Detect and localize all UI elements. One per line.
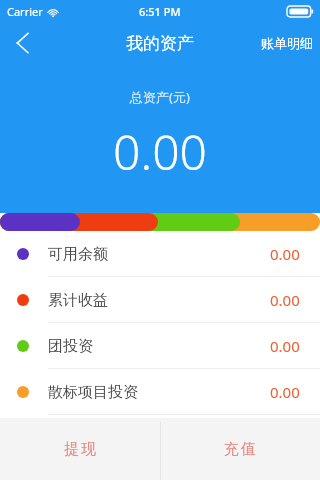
- staticText: 0.00: [270, 382, 300, 402]
- staticText: 0.00: [113, 119, 207, 184]
- button[interactable]: 累计收益: [0, 277, 320, 323]
- staticText: 累计收益: [48, 291, 108, 310]
- button[interactable]: Back: [0, 22, 44, 64]
- staticText: 充值: [223, 440, 257, 459]
- staticText: 散标项目投资: [48, 383, 138, 402]
- staticText: 6:51 PM: [139, 4, 181, 19]
- staticText: 账单明细: [261, 35, 313, 51]
- staticText: 总资产(元): [130, 88, 190, 106]
- staticText: Carrier: [7, 4, 43, 19]
- staticText: 0.00: [270, 244, 300, 264]
- staticText: 团投资: [48, 337, 93, 356]
- staticText: 0.00: [270, 290, 300, 310]
- staticText: 我的资产: [126, 33, 194, 54]
- staticText: 提现: [63, 440, 97, 459]
- button[interactable]: 冻结金额: [0, 415, 320, 461]
- button[interactable]: 提现: [0, 418, 160, 480]
- staticText: 冻结金额: [48, 429, 108, 448]
- button[interactable]: 散标项目投资: [0, 369, 320, 415]
- staticText: 可用余额: [48, 245, 108, 264]
- staticText: 0.00: [270, 336, 300, 356]
- button[interactable]: 可用余额: [0, 231, 320, 277]
- button[interactable]: 团投资: [0, 323, 320, 369]
- button[interactable]: 充值: [160, 418, 320, 480]
- button[interactable]: 账单明细: [254, 22, 320, 64]
